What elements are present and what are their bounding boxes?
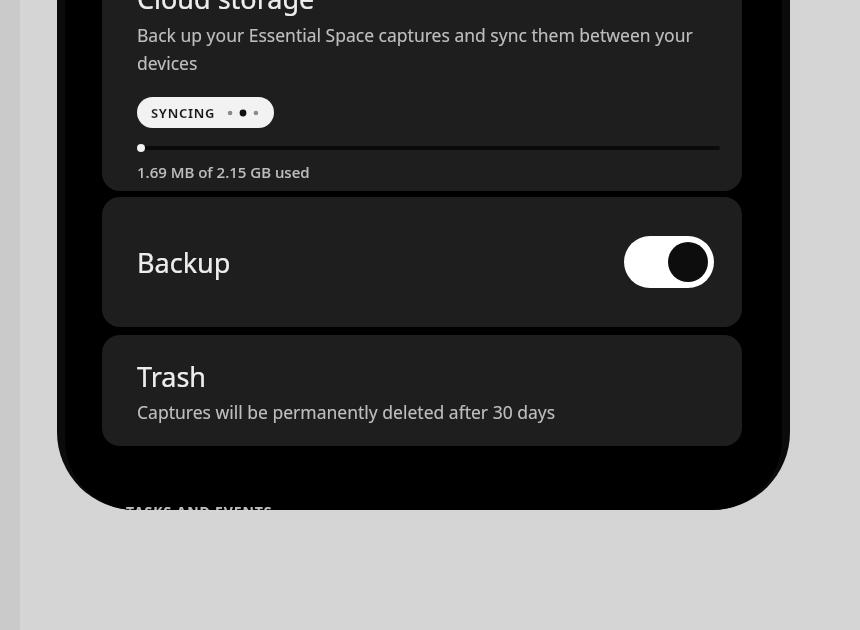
staticText: Back up your Essential Space captures an… bbox=[137, 23, 720, 75]
button[interactable]: SYNCING bbox=[137, 97, 274, 128]
staticText: SYNCING bbox=[151, 104, 216, 122]
staticText: 1.69 MB of 2.15 GB used bbox=[137, 162, 310, 182]
staticText: Captures will be permanently deleted aft… bbox=[137, 400, 556, 424]
staticText: TASKS AND EVENTS bbox=[126, 502, 273, 510]
button[interactable]: Cloud storage bbox=[102, 0, 742, 191]
button[interactable]: Trash bbox=[102, 335, 742, 446]
staticText: Backup bbox=[137, 244, 231, 281]
staticText: Cloud storage bbox=[137, 0, 315, 17]
button[interactable]: Backup bbox=[102, 197, 742, 327]
button[interactable]: Backup toggle, on bbox=[624, 236, 714, 288]
staticText: Trash bbox=[137, 358, 207, 395]
